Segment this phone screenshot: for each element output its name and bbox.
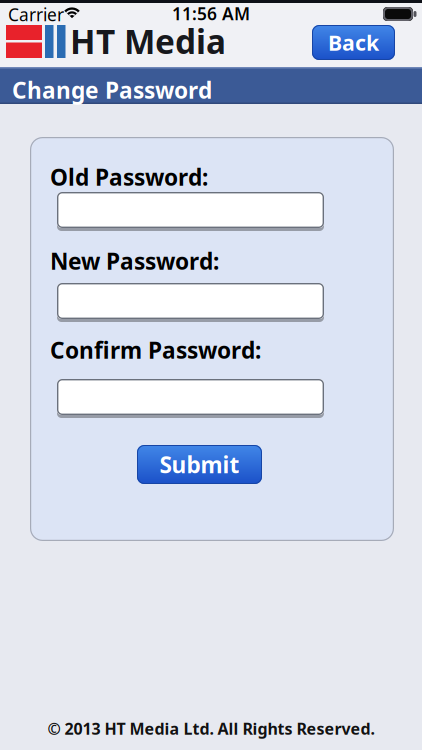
staticText: HT Media [70, 19, 226, 63]
button[interactable]: Submit [137, 445, 262, 484]
staticText: 11:56 AM [172, 2, 250, 25]
staticText: Change Password [12, 75, 212, 105]
staticText: Submit [159, 449, 239, 479]
staticText: Confirm Password: [50, 335, 261, 365]
button[interactable]: Old Password [57, 192, 324, 231]
button[interactable]: New Password [57, 283, 324, 322]
button[interactable]: Confirm Password [57, 379, 324, 418]
button[interactable]: Back [312, 25, 395, 60]
staticText: New Password: [50, 246, 219, 276]
staticText: Carrier [8, 3, 64, 26]
staticText: © 2013 HT Media Ltd. All Rights Reserved… [47, 718, 374, 739]
staticText: Back [328, 28, 379, 57]
staticText: Old Password: [50, 162, 208, 192]
